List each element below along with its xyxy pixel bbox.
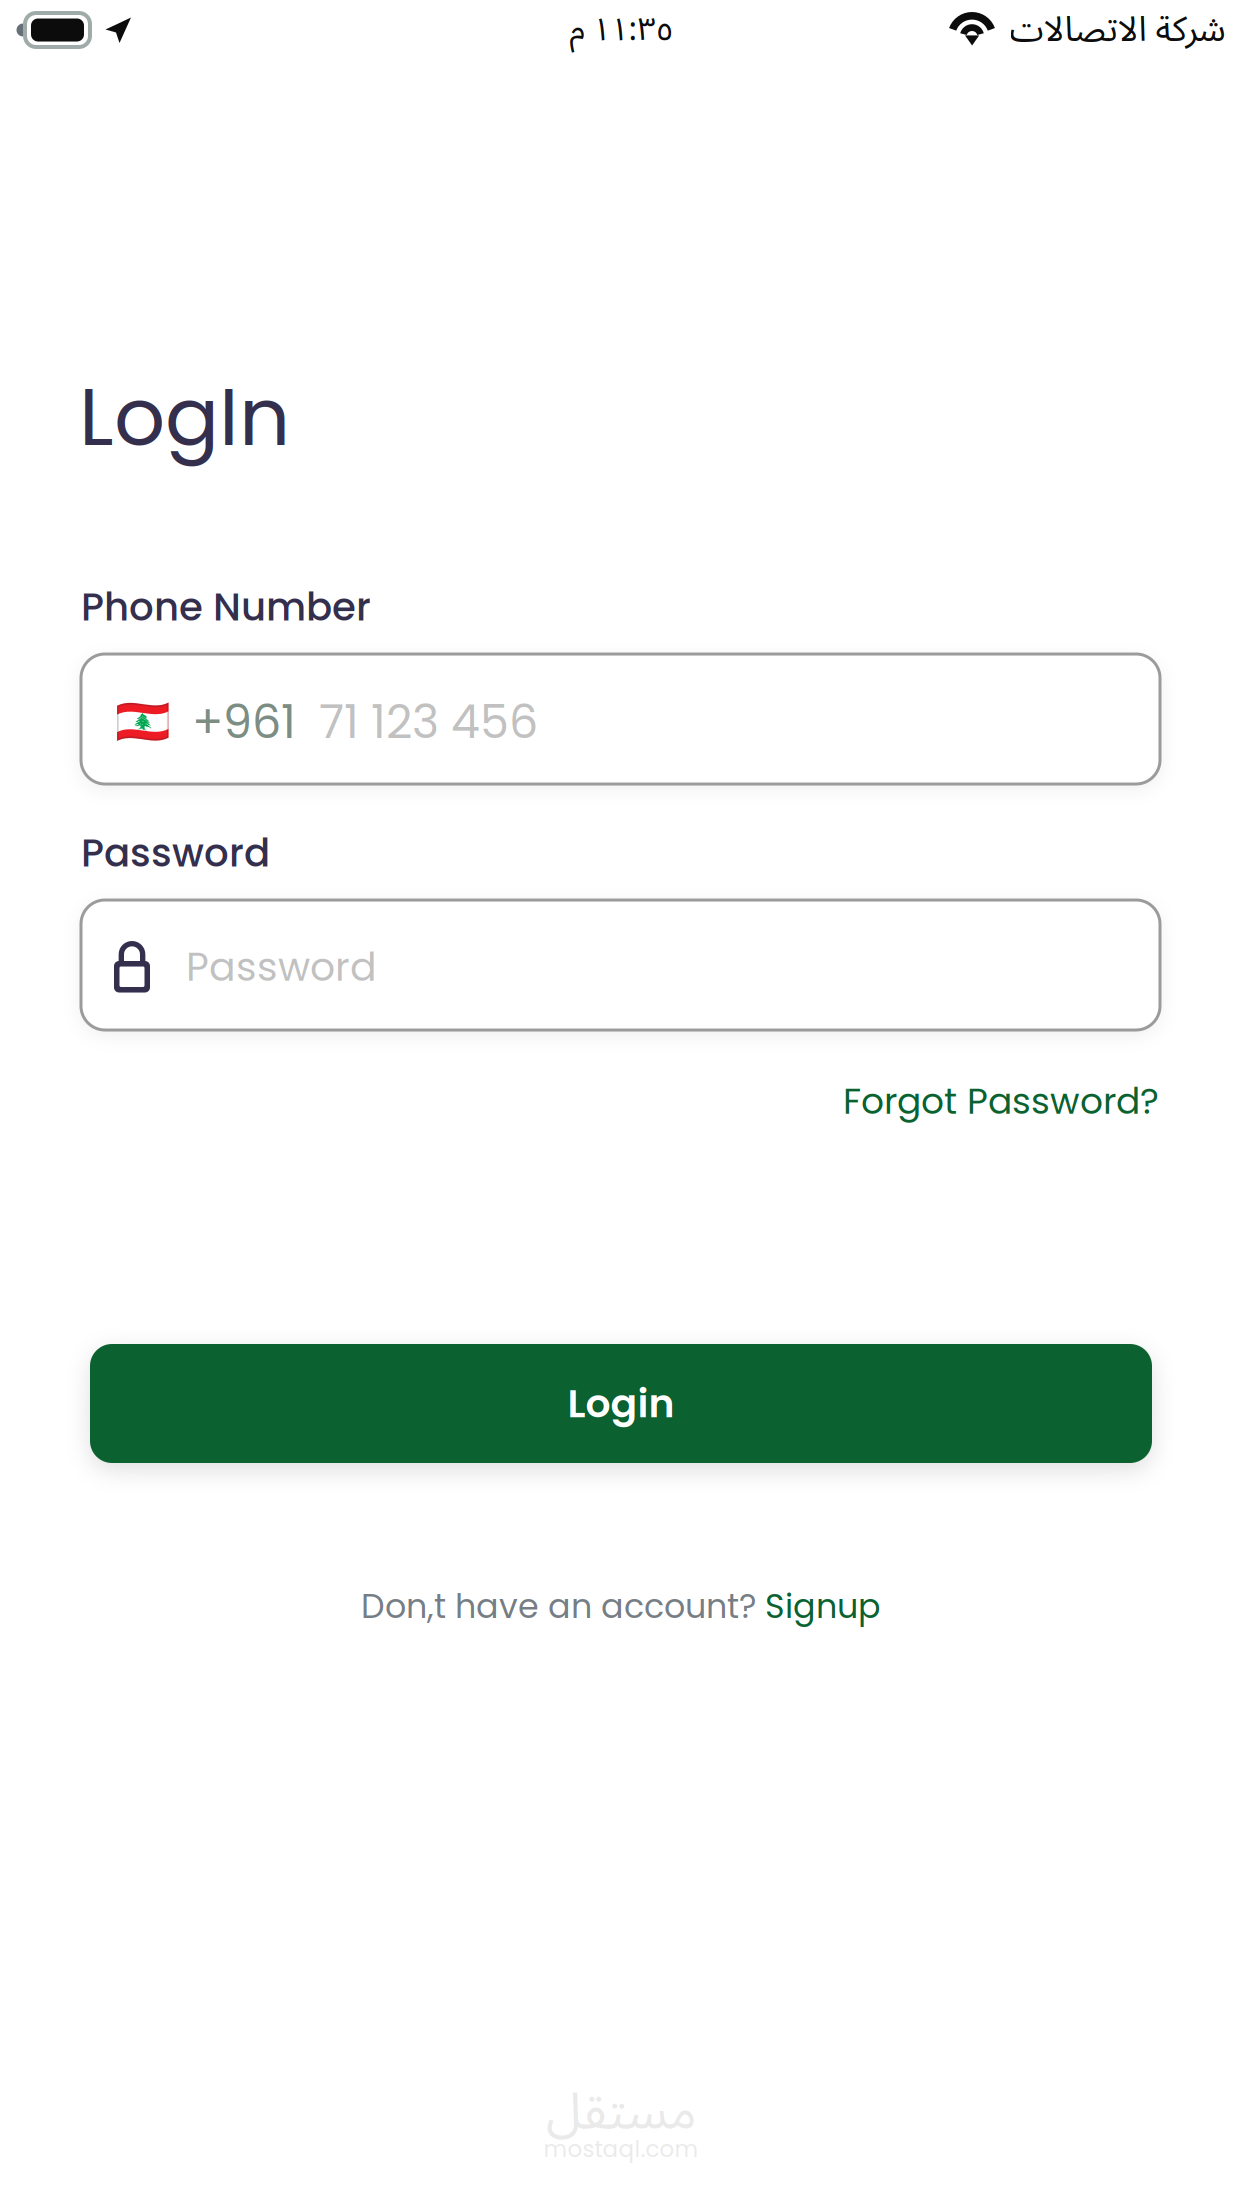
staticText: +961 bbox=[192, 690, 296, 754]
staticText: Signup bbox=[765, 1583, 881, 1630]
staticText: Password bbox=[186, 939, 377, 995]
button[interactable]: Signup bbox=[765, 1583, 881, 1630]
staticText: LogIn bbox=[79, 361, 290, 473]
staticText: Phone Number bbox=[81, 580, 371, 634]
staticText: 71 123 456 bbox=[319, 690, 538, 754]
staticText: mostaql.com bbox=[543, 2133, 698, 2165]
staticText: Don,t have an account? bbox=[361, 1583, 756, 1630]
button[interactable]: Login bbox=[90, 1344, 1152, 1463]
staticText: ١١:٣٥ م bbox=[569, 0, 673, 64]
button[interactable]: Forgot Password? bbox=[843, 1076, 1159, 1126]
staticText: Password bbox=[81, 826, 270, 880]
staticText: Login bbox=[567, 1376, 674, 1431]
staticText: شركة الاتصالات bbox=[1009, 0, 1225, 67]
staticText: Forgot Password? bbox=[843, 1076, 1159, 1126]
staticText: 🇱🇧 bbox=[115, 696, 171, 748]
staticText: مستقل bbox=[545, 2059, 696, 2166]
